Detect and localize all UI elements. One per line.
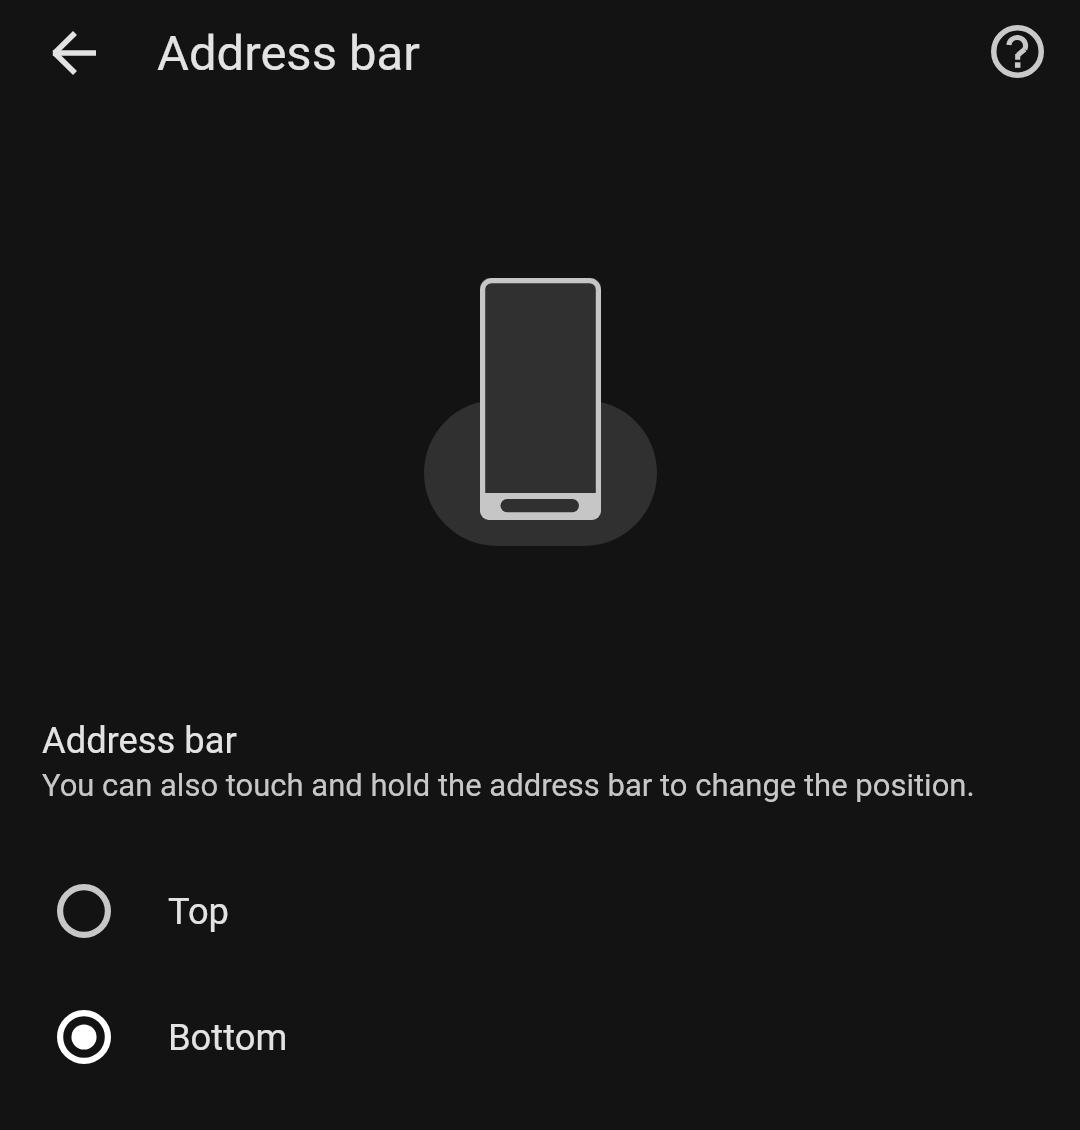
button[interactable]: Top bbox=[0, 848, 1080, 974]
button[interactable]: Bottom bbox=[0, 974, 1080, 1100]
button[interactable]: Help bbox=[981, 15, 1053, 87]
button[interactable]: Back bbox=[36, 17, 108, 89]
staticText: You can also touch and hold the address … bbox=[42, 767, 975, 803]
staticText: Address bar bbox=[42, 719, 237, 762]
staticText: Top bbox=[168, 890, 229, 933]
staticText: Address bar bbox=[157, 25, 420, 82]
staticText: Bottom bbox=[168, 1016, 288, 1059]
